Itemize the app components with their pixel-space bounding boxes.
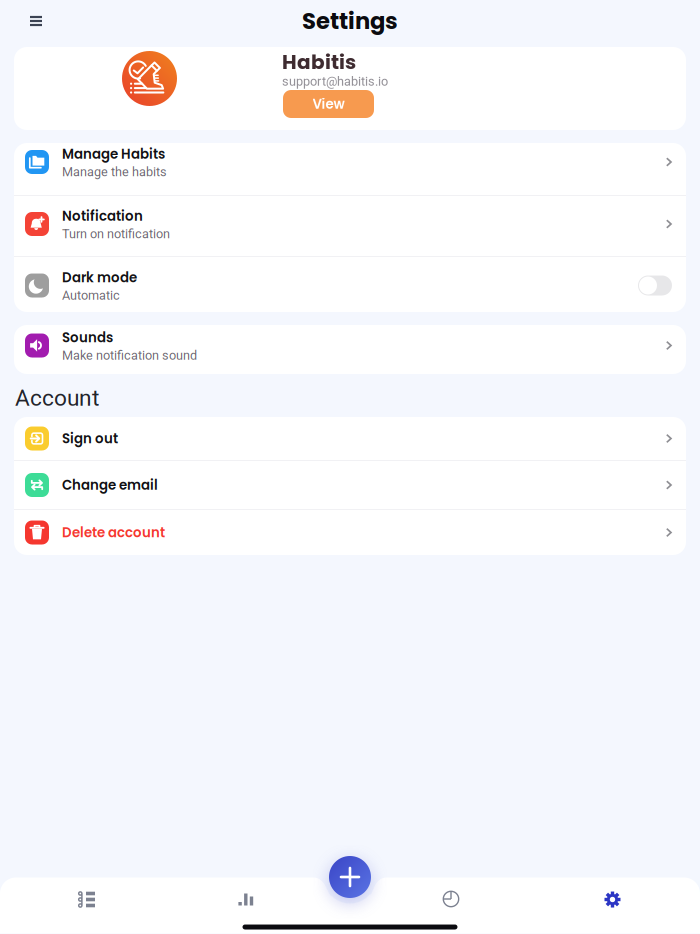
staticText: Notification — [62, 207, 143, 225]
button[interactable]: Delete account — [14, 510, 686, 555]
button[interactable]: Sounds — [14, 325, 686, 374]
button[interactable]: Change email — [14, 461, 686, 509]
staticText: Make notification sound — [62, 348, 197, 363]
staticText: support@habitis.io — [282, 74, 388, 89]
staticText: Sign out — [62, 429, 118, 448]
button[interactable]: Reports — [350, 882, 525, 916]
staticText: Delete account — [62, 523, 165, 542]
button[interactable]: Habits — [0, 882, 175, 916]
button[interactable]: Dark mode — [14, 257, 686, 312]
staticText: Settings — [302, 5, 398, 37]
staticText: Manage Habits — [62, 145, 165, 163]
staticText: Account — [15, 385, 99, 411]
button[interactable]: Menu — [22, 8, 50, 34]
staticText: Change email — [62, 476, 158, 494]
staticText: Habitis — [282, 48, 356, 76]
staticText: Automatic — [62, 288, 120, 303]
staticText: Turn on notification — [62, 226, 170, 241]
staticText: Dark mode — [62, 268, 137, 287]
staticText: Manage the habits — [62, 164, 167, 179]
button[interactable]: Sign out — [14, 417, 686, 460]
staticText: Sounds — [62, 328, 113, 347]
button[interactable]: Statistics — [175, 882, 350, 916]
button[interactable]: Settings — [525, 882, 700, 916]
button[interactable]: Manage Habits — [14, 143, 686, 195]
button[interactable]: View — [283, 90, 374, 118]
button[interactable]: Add habit — [329, 856, 371, 898]
staticText: View — [312, 95, 344, 113]
button[interactable]: Notification — [14, 196, 686, 256]
